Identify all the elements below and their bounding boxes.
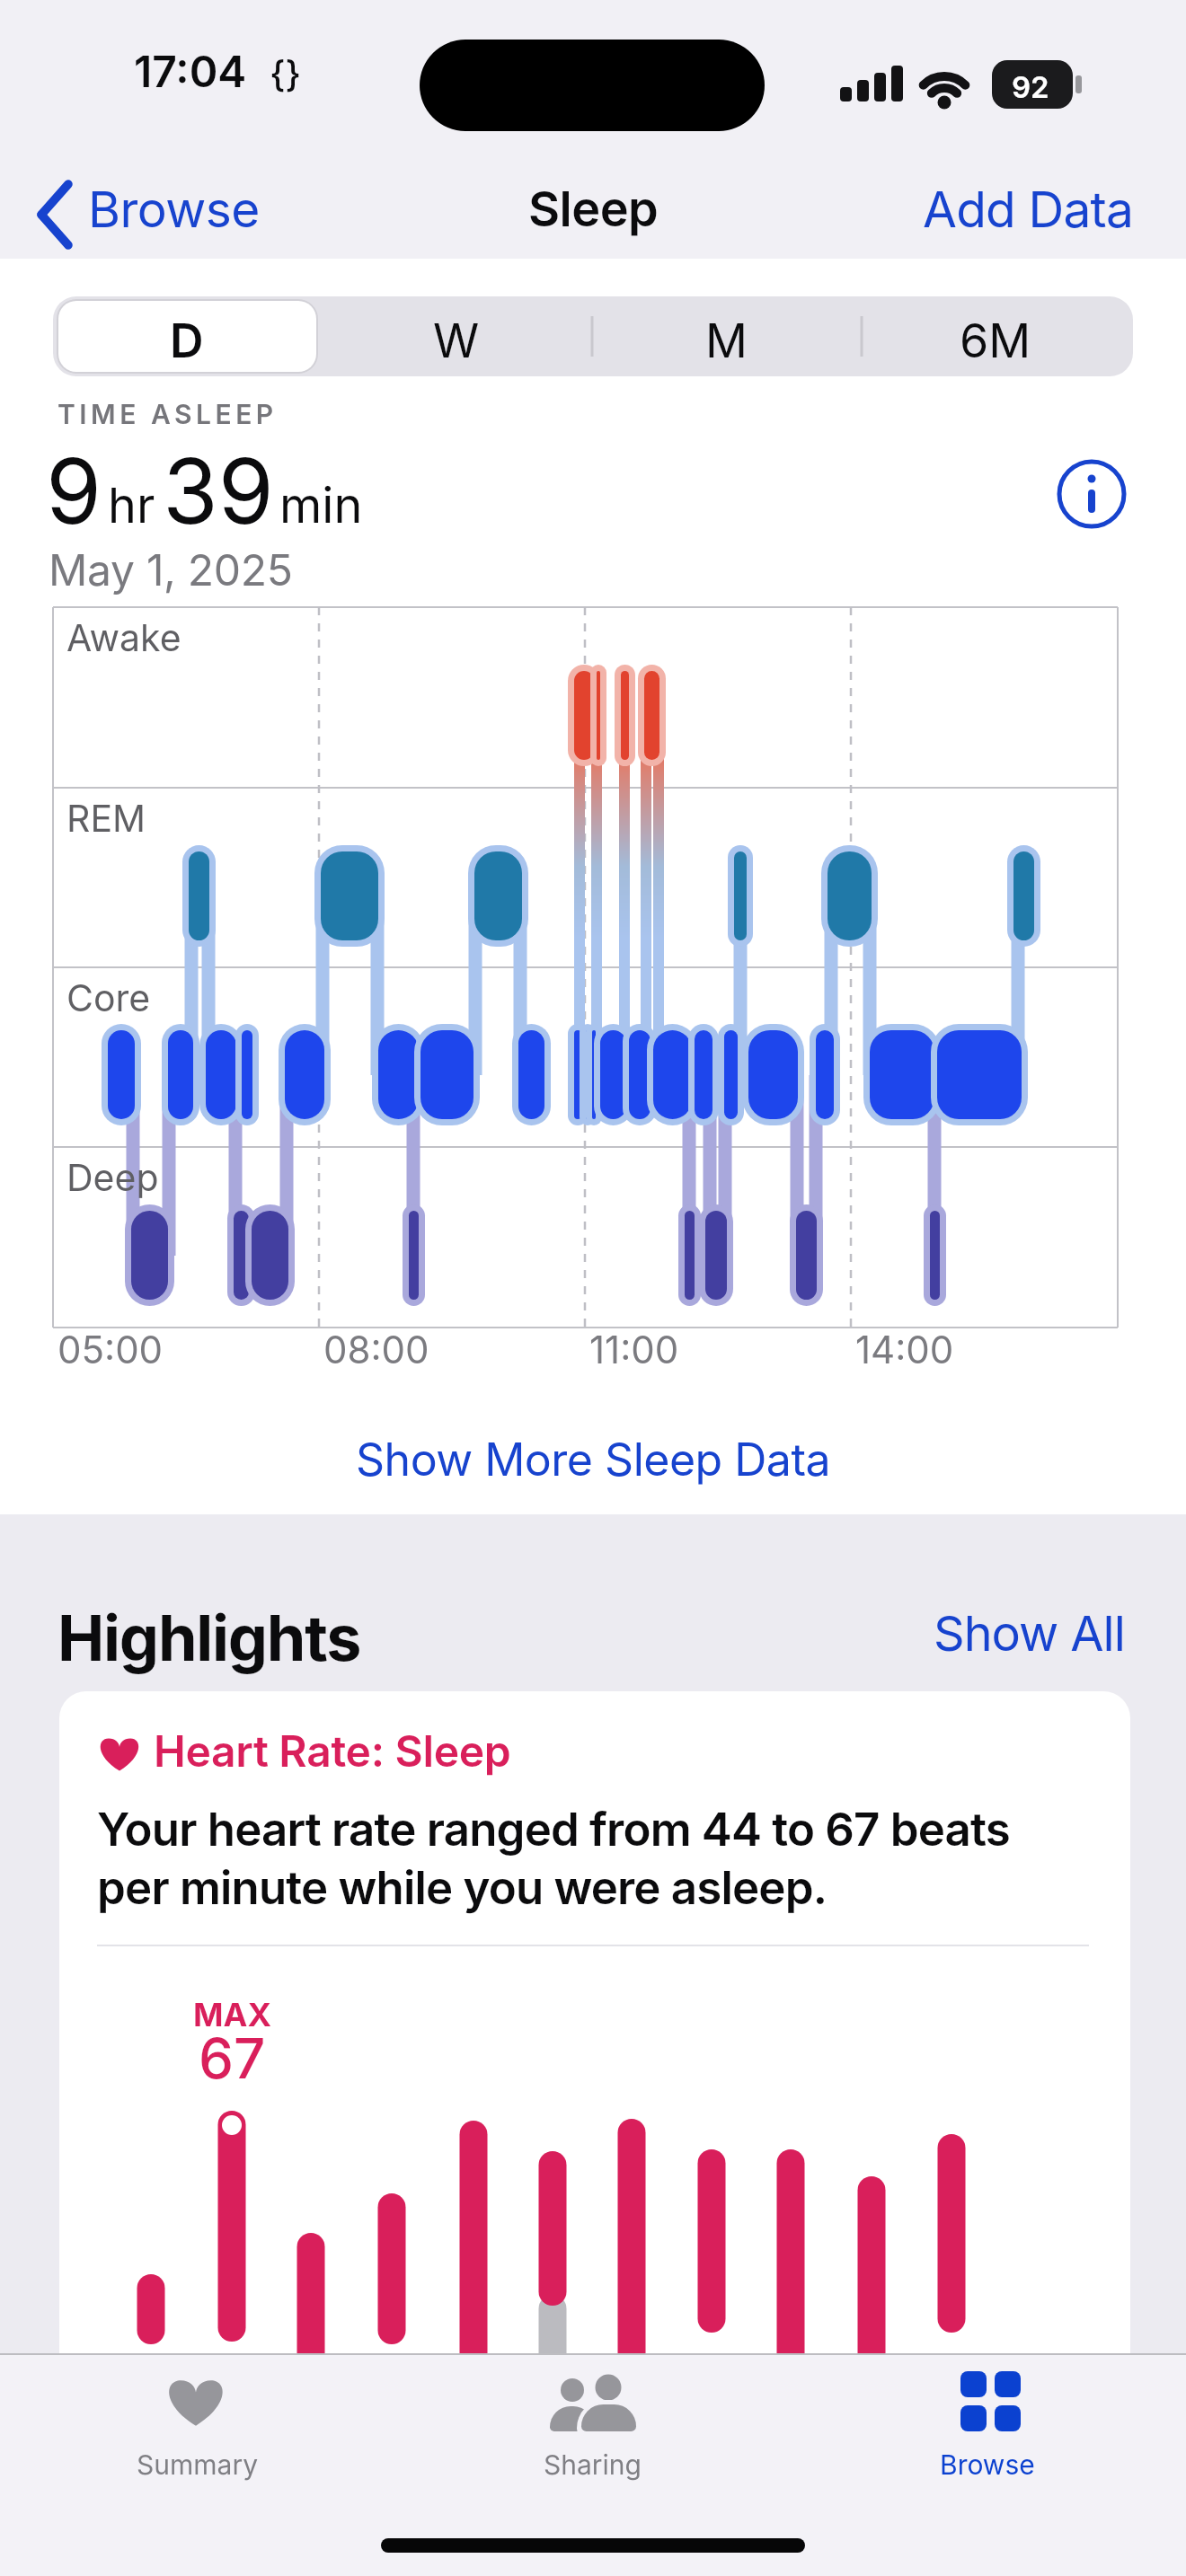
button[interactable] (27, 171, 261, 256)
staticText: Browse (940, 2448, 1035, 2481)
staticText: 9 (46, 437, 102, 545)
staticText: Sharing (544, 2448, 642, 2481)
staticText: Summary (137, 2448, 259, 2481)
staticText: per minute while you were asleep. (97, 1860, 828, 1916)
staticText: 92 (1012, 69, 1049, 105)
staticText: Deep (66, 1155, 159, 1200)
staticText: Show All (934, 1604, 1125, 1663)
staticText: Highlights (58, 1600, 361, 1676)
staticText: 14:00 (855, 1327, 954, 1372)
staticText: 6M (960, 313, 1031, 369)
staticText: Add Data (923, 180, 1134, 240)
staticText: Core (66, 975, 151, 1020)
staticText: 05:00 (58, 1327, 164, 1372)
button[interactable] (861, 296, 1133, 376)
staticText: M (705, 313, 748, 369)
staticText: {} (270, 52, 302, 95)
staticText: Sleep (528, 180, 659, 238)
staticText: REM (66, 796, 146, 841)
button[interactable]: Show More Sleep Data (356, 1433, 831, 1486)
staticText: Awake (66, 615, 181, 660)
button[interactable] (59, 1691, 1130, 2401)
staticText: min (279, 476, 363, 534)
staticText: Browse (88, 180, 260, 240)
button[interactable] (1057, 459, 1127, 529)
staticText: hr (108, 476, 155, 534)
button[interactable] (53, 296, 318, 376)
staticText: May 1, 2025 (49, 543, 293, 595)
button[interactable] (878, 2360, 1093, 2504)
staticText: D (170, 313, 204, 369)
button[interactable] (485, 2360, 701, 2504)
staticText: TIME ASLEEP (58, 398, 278, 430)
button[interactable] (589, 296, 861, 376)
staticText: 08:00 (323, 1327, 429, 1372)
staticText: 17:04 (134, 45, 247, 97)
button[interactable]: Show All (766, 1604, 1125, 1663)
staticText: W (433, 313, 480, 369)
staticText: MAX (193, 1995, 271, 2034)
staticText: 39 (163, 437, 274, 545)
staticText: 67 (199, 2025, 266, 2092)
staticText: Your heart rate ranged from 44 to 67 bea… (97, 1802, 1011, 1857)
staticText: Heart Rate: Sleep (154, 1725, 511, 1777)
button[interactable] (318, 296, 589, 376)
staticText: Show More Sleep Data (356, 1433, 831, 1486)
button[interactable] (88, 2360, 304, 2504)
staticText: 11:00 (589, 1327, 679, 1372)
button[interactable]: Add Data (774, 180, 1134, 240)
